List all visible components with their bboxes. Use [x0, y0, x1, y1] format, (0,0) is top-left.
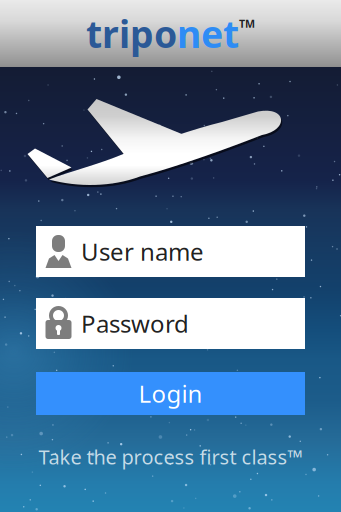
staticText: tripo: [86, 9, 177, 58]
staticText: User name: [81, 236, 204, 267]
staticText: net: [177, 9, 239, 58]
staticText: Login: [138, 378, 202, 409]
button[interactable]: Password: [36, 298, 305, 349]
staticText: Take the process first class™: [38, 443, 302, 470]
staticText: Password: [81, 308, 189, 339]
button[interactable]: User name: [36, 226, 305, 277]
staticText: TM: [239, 16, 255, 31]
button[interactable]: Login: [36, 372, 305, 415]
